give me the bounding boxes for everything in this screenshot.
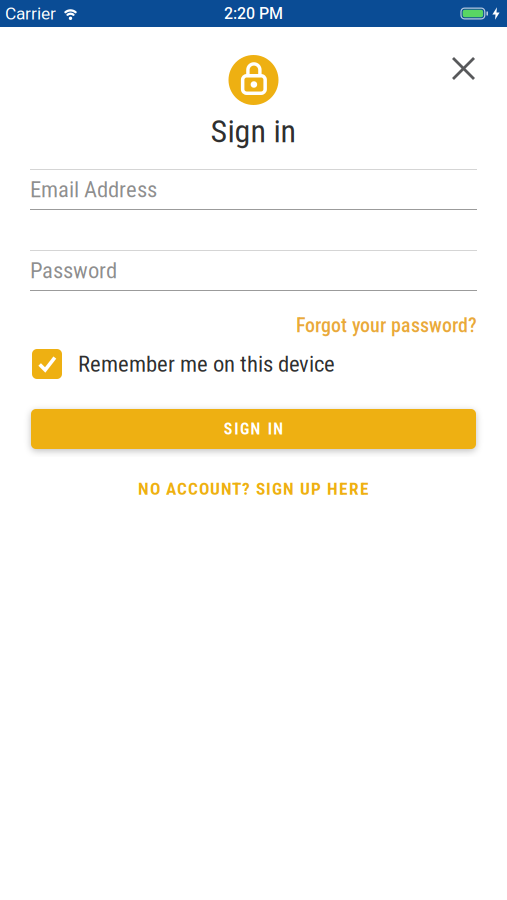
button[interactable]: Close [445, 50, 482, 87]
button[interactable]: Password [30, 250, 477, 291]
staticText: 2:20 PM [224, 4, 283, 23]
staticText: Carrier [5, 3, 56, 24]
staticText: Forgot your password? [296, 314, 477, 337]
button[interactable]: Forgot your password? [296, 314, 477, 337]
button[interactable]: NO ACCOUNT? SIGN UP HERE [123, 479, 383, 499]
button[interactable]: Email Address [30, 169, 477, 210]
staticText: Remember me on this device [78, 351, 335, 377]
button[interactable]: Remember me on this device [32, 349, 62, 379]
button[interactable]: SIGN IN [31, 409, 476, 449]
staticText: Password [30, 258, 117, 283]
staticText: NO ACCOUNT? SIGN UP HERE [138, 479, 369, 499]
staticText: Email Address [30, 177, 157, 202]
staticText: Sign in [210, 113, 296, 150]
staticText: SIGN IN [224, 420, 283, 438]
